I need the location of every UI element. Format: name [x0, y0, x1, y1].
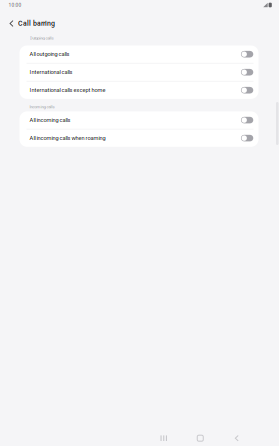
staticText: Outgoing calls [29, 35, 53, 40]
staticText: International calls except home [29, 87, 105, 93]
staticText: Incoming calls [29, 104, 54, 109]
staticText: 10:00 [8, 2, 21, 8]
staticText: Call barring [18, 19, 55, 27]
button[interactable]: All incoming calls when roaming [19, 129, 258, 147]
button[interactable]: Home [182, 428, 218, 446]
button[interactable]: International calls [19, 63, 258, 81]
button[interactable]: International calls except home [19, 81, 258, 99]
button[interactable]: Back [218, 428, 255, 446]
button[interactable]: All outgoing calls [19, 45, 258, 63]
button[interactable]: Recent apps [145, 428, 182, 446]
staticText: All outgoing calls [29, 51, 69, 57]
button[interactable]: All incoming calls [19, 111, 258, 129]
staticText: All incoming calls [29, 117, 70, 123]
staticText: All incoming calls when roaming [29, 135, 105, 141]
staticText: International calls [29, 69, 72, 75]
button[interactable]: Back [5, 16, 18, 30]
